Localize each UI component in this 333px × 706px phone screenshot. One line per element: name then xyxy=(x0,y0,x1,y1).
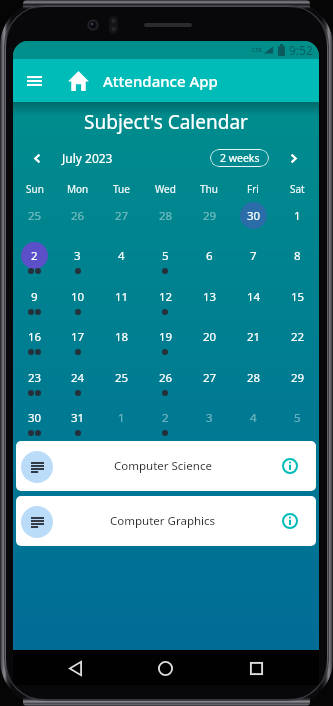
staticText: Sat xyxy=(290,182,305,196)
staticText: Fri xyxy=(247,182,259,196)
button[interactable]: 25 xyxy=(99,364,143,391)
staticText: 21 xyxy=(247,329,261,345)
staticText: 8 xyxy=(294,248,301,264)
button[interactable]: 17 xyxy=(56,323,99,350)
staticText: Subject's Calendar xyxy=(13,109,319,135)
button[interactable]: 21 xyxy=(231,323,275,350)
button[interactable]: 24 xyxy=(56,364,99,391)
button[interactable]: 23 xyxy=(13,364,56,391)
staticText: 5 xyxy=(294,410,301,426)
staticText: 2 weeks xyxy=(220,151,260,165)
staticText: 27 xyxy=(203,370,217,386)
button[interactable]: 26 xyxy=(143,364,187,391)
staticText: LTE xyxy=(252,46,263,54)
button[interactable]: Recents xyxy=(239,651,273,685)
staticText: 5 xyxy=(162,248,169,264)
staticText: 11 xyxy=(115,289,129,305)
staticText: 10 xyxy=(71,289,85,305)
button[interactable]: 19 xyxy=(143,323,187,350)
button[interactable]: 7 xyxy=(231,242,275,269)
staticText: 17 xyxy=(71,329,85,345)
button[interactable]: 12 xyxy=(143,283,187,310)
staticText: 6 xyxy=(206,248,213,264)
button[interactable]: Info xyxy=(273,449,307,483)
staticText: Wed xyxy=(155,182,176,196)
button[interactable]: 27 xyxy=(99,202,143,229)
staticText: 26 xyxy=(159,370,173,386)
staticText: 2 xyxy=(162,410,169,426)
staticText: 3 xyxy=(74,248,81,264)
staticText: 15 xyxy=(291,289,305,305)
button[interactable]: Home xyxy=(63,67,93,95)
staticText: 26 xyxy=(71,208,85,224)
button[interactable]: 10 xyxy=(56,283,99,310)
staticText: Mon xyxy=(67,182,89,196)
button[interactable]: 28 xyxy=(143,202,187,229)
staticText: 25 xyxy=(115,370,129,386)
staticText: 24 xyxy=(71,370,85,386)
button[interactable]: Menu xyxy=(16,65,52,96)
button[interactable]: 30 xyxy=(231,202,275,229)
button[interactable]: 3 xyxy=(187,404,231,431)
staticText: 27 xyxy=(115,208,129,224)
button[interactable]: 2 xyxy=(143,404,187,431)
button[interactable]: 25 xyxy=(13,202,56,229)
staticText: 3 xyxy=(206,410,213,426)
staticText: 13 xyxy=(203,289,217,305)
button[interactable]: 20 xyxy=(187,323,231,350)
button[interactable]: 3 xyxy=(56,242,99,269)
staticText: Sun xyxy=(26,182,44,196)
button[interactable]: 4 xyxy=(99,242,143,269)
button[interactable]: 8 xyxy=(275,242,319,269)
button[interactable]: Previous xyxy=(24,145,50,171)
staticText: 9 xyxy=(31,289,38,305)
button[interactable]: Next xyxy=(280,145,306,171)
staticText: Tue xyxy=(113,182,130,196)
button[interactable]: Home xyxy=(148,651,182,685)
button[interactable]: 1 xyxy=(99,404,143,431)
button[interactable]: 1 xyxy=(275,202,319,229)
button[interactable]: 27 xyxy=(187,364,231,391)
staticText: Computer Science xyxy=(114,458,212,474)
button[interactable]: 26 xyxy=(56,202,99,229)
button[interactable]: Computer Science xyxy=(16,441,316,491)
staticText: 22 xyxy=(291,329,305,345)
button[interactable]: 11 xyxy=(99,283,143,310)
button[interactable]: 2 xyxy=(13,242,56,269)
button[interactable]: 29 xyxy=(187,202,231,229)
staticText: 29 xyxy=(203,208,217,224)
staticText: 19 xyxy=(159,329,173,345)
button[interactable]: 9 xyxy=(13,283,56,310)
staticText: 30 xyxy=(28,410,42,426)
staticText: Attendance App xyxy=(103,71,218,91)
button[interactable]: 15 xyxy=(275,283,319,310)
button[interactable]: 13 xyxy=(187,283,231,310)
button[interactable]: 29 xyxy=(275,364,319,391)
staticText: 14 xyxy=(247,289,261,305)
button[interactable]: Back xyxy=(58,651,92,685)
button[interactable]: 5 xyxy=(143,242,187,269)
button[interactable]: 5 xyxy=(275,404,319,431)
staticText: 25 xyxy=(28,208,42,224)
button[interactable]: Computer Graphics xyxy=(16,496,316,546)
button[interactable]: 30 xyxy=(13,404,56,431)
staticText: 4 xyxy=(118,248,125,264)
staticText: 2 xyxy=(31,248,38,264)
button[interactable]: 6 xyxy=(187,242,231,269)
button[interactable]: 18 xyxy=(99,323,143,350)
staticText: 20 xyxy=(203,329,217,345)
button[interactable]: 31 xyxy=(56,404,99,431)
staticText: July 2023 xyxy=(62,150,113,166)
button[interactable]: 4 xyxy=(231,404,275,431)
button[interactable]: 28 xyxy=(231,364,275,391)
staticText: 1 xyxy=(118,410,125,426)
button[interactable]: 14 xyxy=(231,283,275,310)
staticText: 9:52 xyxy=(289,42,313,58)
button[interactable]: 22 xyxy=(275,323,319,350)
staticText: 1 xyxy=(294,208,301,224)
staticText: 30 xyxy=(247,208,261,224)
staticText: 4 xyxy=(250,410,257,426)
button[interactable]: Info xyxy=(273,504,307,538)
button[interactable]: 2 weeks xyxy=(210,149,269,167)
button[interactable]: 16 xyxy=(13,323,56,350)
